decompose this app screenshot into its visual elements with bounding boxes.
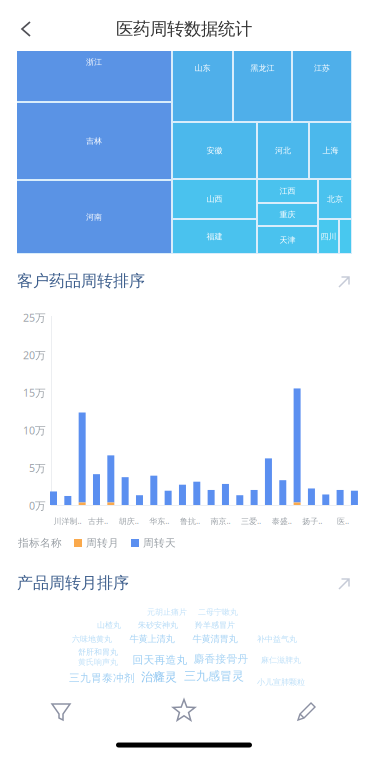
staticText: 20万: [23, 348, 46, 362]
staticText: 麻仁滋脾丸: [261, 655, 301, 665]
staticText: 河南: [86, 212, 102, 222]
staticText: 福建: [206, 232, 222, 241]
staticText: 四川: [320, 232, 336, 241]
staticText: 河北: [275, 146, 291, 155]
staticText: 黑龙江: [250, 63, 274, 73]
staticText: 15万: [23, 386, 46, 400]
staticText: 指标名称: [18, 536, 62, 549]
staticText: 朱砂安神丸: [138, 620, 178, 630]
staticText: 三九胃泰冲剂: [69, 671, 135, 684]
staticText: 南京..: [210, 516, 230, 526]
staticText: 扬子..: [302, 516, 322, 526]
staticText: 山西: [206, 194, 222, 204]
staticText: 5万: [29, 461, 46, 475]
staticText: 重庆: [279, 210, 295, 219]
staticText: 浙江: [86, 57, 102, 67]
staticText: 上海: [322, 146, 338, 155]
staticText: 舒肝和胃丸: [78, 647, 118, 657]
staticText: 鲁抗..: [180, 516, 200, 526]
button[interactable]: Expand: [331, 269, 357, 295]
staticText: 三爱..: [241, 516, 261, 526]
staticText: 六味地黄丸: [72, 634, 112, 644]
staticText: 江西: [279, 186, 295, 196]
staticText: 华东..: [149, 516, 169, 526]
staticText: 回天再造丸: [132, 653, 187, 666]
staticText: 补中益气丸: [257, 634, 297, 644]
staticText: 三九感冒灵: [184, 669, 244, 683]
staticText: 川洋制..: [53, 516, 81, 526]
staticText: 产品周转月排序: [17, 573, 129, 593]
staticText: 古井..: [88, 516, 108, 526]
staticText: 山楂丸: [97, 620, 121, 630]
staticText: 山东: [194, 63, 210, 73]
staticText: 治癃灵: [141, 670, 177, 684]
staticText: 医药周转数据统计: [116, 18, 252, 40]
staticText: 周转月: [86, 536, 119, 549]
staticText: 牛黄上清丸: [129, 633, 174, 645]
staticText: 天津: [279, 235, 295, 245]
staticText: 二母宁嗽丸: [198, 607, 238, 617]
staticText: 胡庆..: [119, 516, 139, 526]
staticText: 0万: [29, 498, 46, 513]
staticText: 小儿宣肺颗粒: [257, 677, 305, 687]
staticText: 黄氏响声丸: [78, 657, 118, 667]
button[interactable]: Back: [4, 7, 48, 51]
staticText: 吉林: [86, 136, 102, 146]
staticText: 泰盛..: [272, 516, 292, 526]
staticText: 10万: [23, 423, 46, 437]
staticText: 25万: [23, 310, 46, 325]
staticText: 羚羊感冒片: [195, 620, 235, 630]
button[interactable]: Edit: [277, 691, 337, 731]
staticText: 麝香接骨丹: [193, 652, 248, 665]
staticText: 安徽: [206, 146, 222, 155]
staticText: 江苏: [314, 63, 330, 73]
staticText: 客户药品周转排序: [17, 271, 145, 291]
staticText: 周转天: [143, 536, 176, 549]
button[interactable]: Filter: [31, 691, 91, 731]
button[interactable]: Favorite: [154, 691, 214, 731]
staticText: 元胡止痛片: [147, 607, 187, 617]
staticText: 北京: [327, 194, 343, 204]
staticText: 医..: [337, 516, 349, 526]
button[interactable]: Expand: [331, 571, 357, 597]
staticText: 牛黄清胃丸: [192, 633, 237, 645]
